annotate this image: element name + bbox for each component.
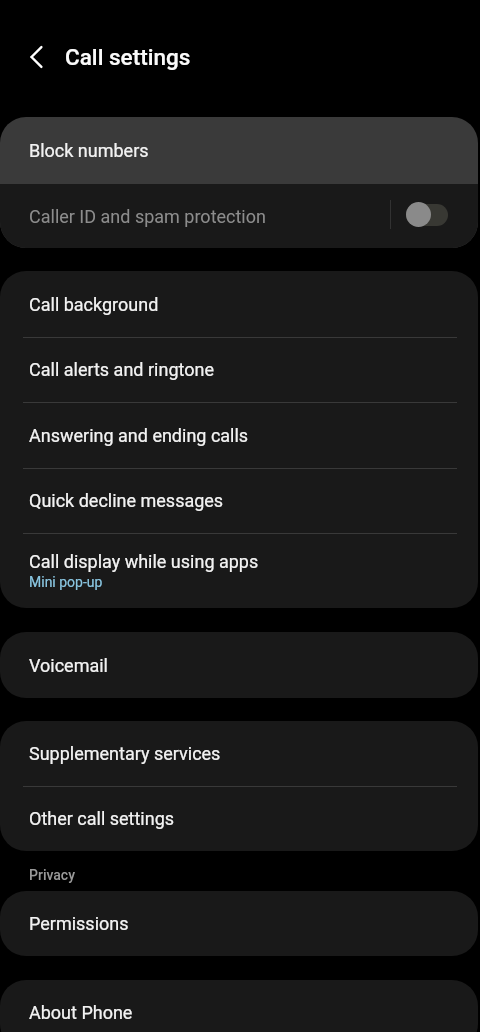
button[interactable]: Supplementary services bbox=[0, 721, 478, 786]
staticText: About Phone bbox=[29, 1002, 133, 1023]
staticText: Other call settings bbox=[29, 808, 175, 829]
staticText: Call display while using apps bbox=[29, 551, 259, 572]
button[interactable]: Call background bbox=[0, 271, 478, 337]
button[interactable]: Back bbox=[18, 36, 60, 78]
button[interactable]: Block numbers bbox=[0, 117, 478, 184]
button[interactable]: Call display while using apps bbox=[0, 533, 478, 608]
button[interactable]: Permissions bbox=[0, 891, 478, 956]
button[interactable]: Caller ID and spam protection bbox=[0, 184, 478, 248]
staticText: Quick decline messages bbox=[29, 490, 224, 511]
staticText: Call settings bbox=[65, 44, 191, 70]
staticText: Call alerts and ringtone bbox=[29, 359, 214, 380]
staticText: Answering and ending calls bbox=[29, 425, 249, 446]
staticText: Block numbers bbox=[29, 140, 149, 161]
button[interactable]: Quick decline messages bbox=[0, 468, 478, 533]
button[interactable]: Answering and ending calls bbox=[0, 402, 478, 468]
button[interactable]: Other call settings bbox=[0, 786, 478, 851]
button[interactable]: Voicemail bbox=[0, 632, 478, 698]
staticText: Caller ID and spam protection bbox=[29, 206, 266, 227]
staticText: Voicemail bbox=[29, 655, 108, 676]
staticText: Supplementary services bbox=[29, 743, 221, 764]
button[interactable]: Caller ID and spam protection switch bbox=[406, 202, 448, 227]
staticText: Call background bbox=[29, 294, 159, 315]
button[interactable]: Call alerts and ringtone bbox=[0, 337, 478, 402]
staticText: Privacy bbox=[29, 867, 76, 883]
staticText: Permissions bbox=[29, 913, 129, 934]
staticText: Mini pop-up bbox=[29, 574, 103, 590]
button[interactable]: About Phone bbox=[0, 980, 478, 1032]
